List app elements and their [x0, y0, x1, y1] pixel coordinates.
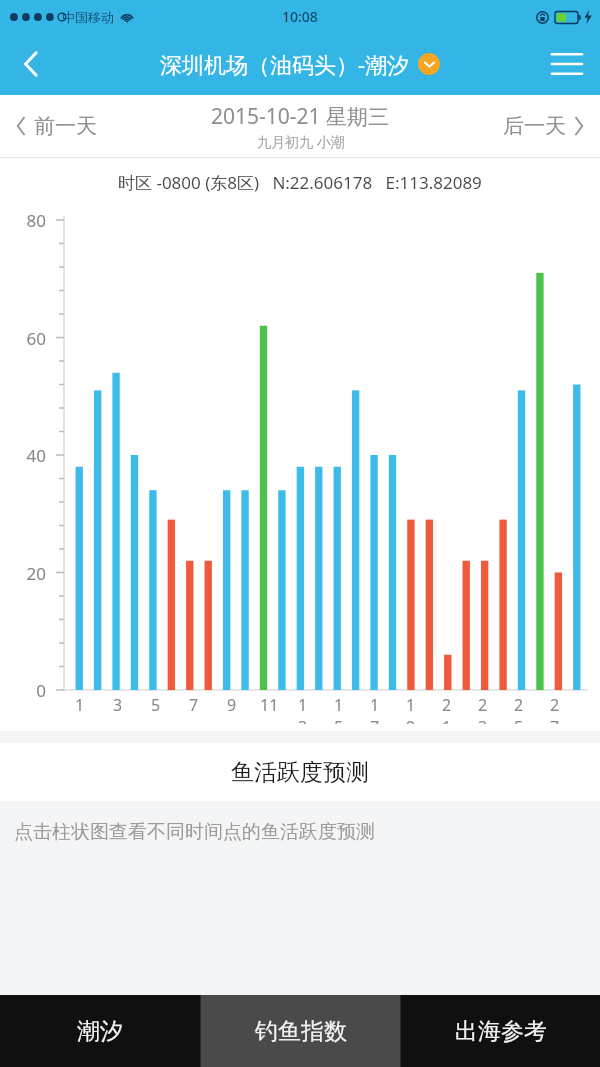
staticText: 后一天 [503, 113, 566, 139]
staticText: 潮汐 [77, 1017, 123, 1046]
staticText: 5 [151, 694, 161, 716]
staticText: 时区 -0800 (东8区) N:22.606178 E:113.82089 [118, 171, 482, 194]
staticText: 鱼活跃度预测 [231, 758, 369, 787]
staticText: 中国移动 [62, 9, 114, 25]
staticText: 深圳机场（油码头）-潮汐 [160, 49, 410, 79]
staticText: 21 [442, 694, 460, 724]
staticText: 27 [550, 694, 568, 724]
staticText: 2015-10-21 星期三 [211, 102, 390, 131]
button[interactable]: Menu [534, 33, 600, 95]
staticText: 3 [113, 694, 123, 716]
staticText: 23 [478, 694, 496, 724]
staticText: 1 [75, 694, 85, 716]
button[interactable]: 潮汐 [0, 995, 200, 1067]
staticText: 点击柱状图查看不同时间点的鱼活跃度预测 [14, 820, 375, 844]
button[interactable]: 前一天 [0, 95, 113, 157]
button[interactable]: 钓鱼指数 [201, 995, 400, 1067]
staticText: 60 [0, 327, 46, 350]
staticText: 10:08 [282, 7, 318, 26]
staticText: 13 [298, 694, 316, 724]
staticText: 九月初九 小潮 [257, 132, 345, 151]
button[interactable]: 深圳机场（油码头）-潮汐 [160, 49, 440, 79]
button[interactable]: 出海参考 [401, 995, 600, 1067]
staticText: 15 [334, 694, 352, 724]
staticText: 40 [0, 444, 46, 467]
staticText: 25 [514, 694, 532, 724]
staticText: 钓鱼指数 [255, 1017, 347, 1046]
staticText: 11 [260, 694, 279, 716]
staticText: 0 [0, 679, 46, 702]
staticText: 17 [370, 694, 388, 724]
staticText: 7 [189, 694, 199, 716]
staticText: 前一天 [34, 113, 97, 139]
staticText: 80 [0, 209, 46, 232]
staticText: 20 [0, 562, 46, 585]
button[interactable]: 后一天 [487, 95, 600, 157]
staticText: 19 [406, 694, 424, 724]
staticText: 出海参考 [455, 1017, 547, 1046]
button[interactable]: Back [0, 33, 62, 95]
staticText: 9 [227, 694, 237, 716]
